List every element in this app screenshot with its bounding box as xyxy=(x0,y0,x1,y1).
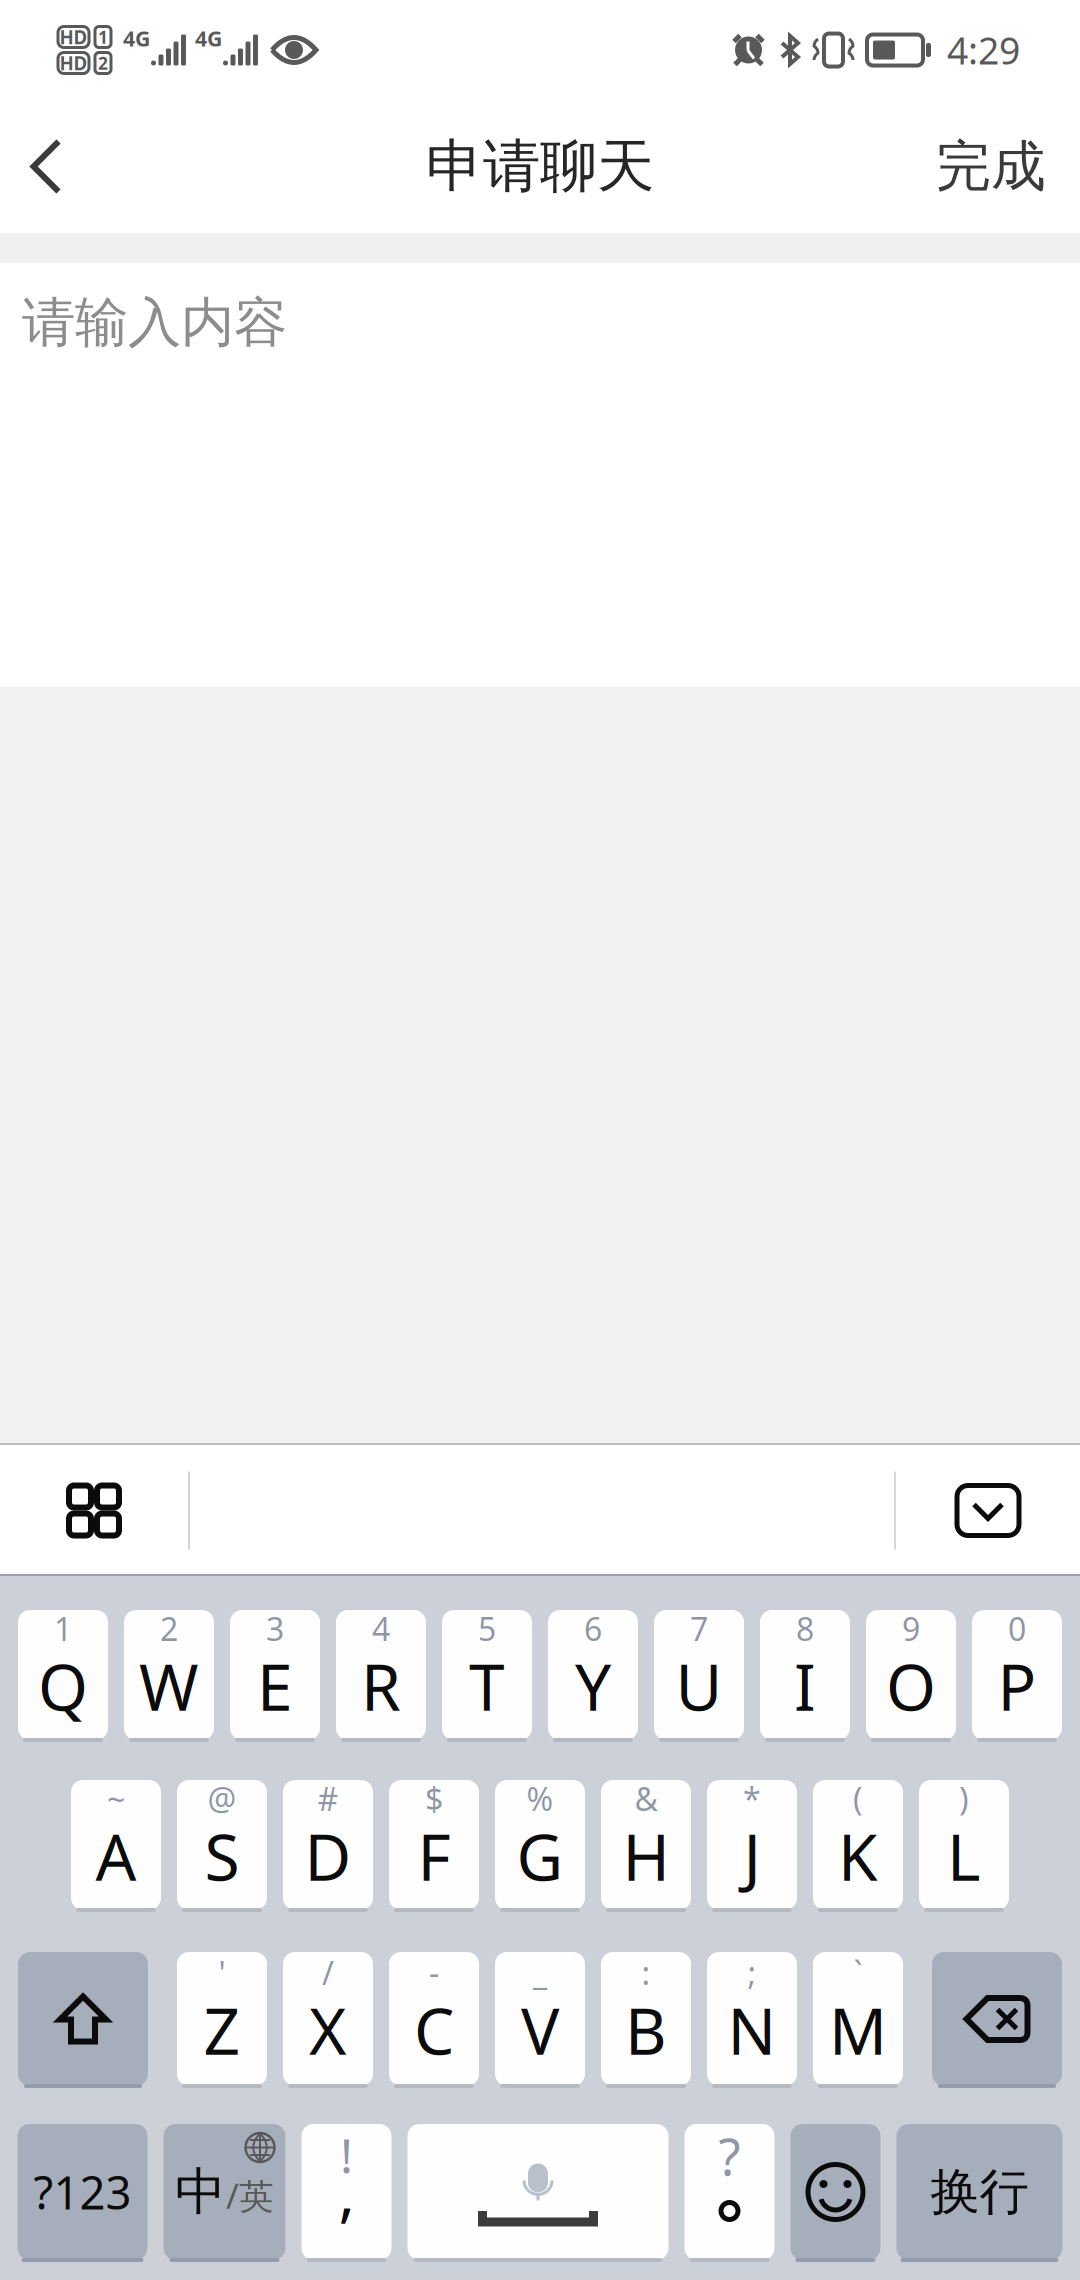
button[interactable]: 完成 xyxy=(908,100,1080,232)
staticText: B xyxy=(625,1987,667,2072)
button[interactable]: Back xyxy=(0,100,92,232)
button[interactable]: # xyxy=(283,1780,373,1910)
staticText: 4G xyxy=(123,24,150,52)
staticText: ` xyxy=(853,1951,862,1994)
staticText: $ xyxy=(425,1777,443,1820)
staticText: 请输入内容 xyxy=(22,290,287,355)
button[interactable]: Question mark and period xyxy=(684,2124,774,2260)
button[interactable]: Input panels xyxy=(0,1445,188,1576)
staticText: K xyxy=(838,1813,878,1898)
staticText: 1 xyxy=(98,25,108,48)
button[interactable]: ( xyxy=(813,1780,903,1910)
staticText: ( xyxy=(853,1777,863,1820)
staticText: R xyxy=(361,1643,401,1728)
button[interactable]: / xyxy=(283,1952,373,2086)
button[interactable]: - xyxy=(389,1952,479,2086)
staticText: / xyxy=(322,1951,334,1994)
staticText: # xyxy=(317,1777,338,1820)
staticText: 2 xyxy=(160,1607,178,1650)
staticText: ) xyxy=(959,1777,969,1820)
staticText: 2 xyxy=(98,51,108,74)
button[interactable]: 5 xyxy=(442,1610,532,1740)
button[interactable]: 6 xyxy=(548,1610,638,1740)
button[interactable]: 4 xyxy=(336,1610,426,1740)
button[interactable]: 2 xyxy=(124,1610,214,1740)
button[interactable]: % xyxy=(495,1780,585,1910)
staticText: ?123 xyxy=(33,2162,131,2222)
staticText: M xyxy=(829,1987,887,2072)
button[interactable]: ) xyxy=(919,1780,1009,1910)
button[interactable]: @ xyxy=(177,1780,267,1910)
button[interactable]: ` xyxy=(813,1952,903,2086)
staticText: E xyxy=(257,1643,293,1728)
staticText: 中 xyxy=(175,2161,226,2223)
staticText: HD xyxy=(59,51,87,75)
staticText: @ xyxy=(207,1777,236,1820)
staticText: ' xyxy=(218,1951,225,1994)
staticText: ! xyxy=(340,2123,353,2187)
staticText: ? xyxy=(718,2122,740,2190)
button[interactable]: _ xyxy=(495,1952,585,2086)
staticText: 1 xyxy=(54,1607,72,1650)
staticText: 5 xyxy=(478,1607,496,1650)
button[interactable]: ?123 xyxy=(17,2124,147,2260)
button[interactable]: Space xyxy=(407,2124,668,2260)
button[interactable]: Backspace xyxy=(932,1952,1062,2086)
staticText: 4:29 xyxy=(947,25,1020,75)
staticText: X xyxy=(309,1987,347,2072)
button[interactable]: 换行 xyxy=(896,2124,1062,2260)
button[interactable]: * xyxy=(707,1780,797,1910)
staticText: G xyxy=(516,1813,563,1898)
button[interactable]: ; xyxy=(707,1952,797,2086)
button[interactable]: 0 xyxy=(972,1610,1062,1740)
staticText: 3 xyxy=(266,1607,284,1650)
button[interactable]: 9 xyxy=(866,1610,956,1740)
button[interactable]: 1 xyxy=(18,1610,108,1740)
button[interactable]: $ xyxy=(389,1780,479,1910)
staticText: HD xyxy=(59,25,87,49)
button[interactable]: & xyxy=(601,1780,691,1910)
staticText: 换行 xyxy=(930,2162,1028,2222)
staticText: Y xyxy=(575,1643,611,1728)
staticText: ; xyxy=(747,1951,756,1994)
staticText: * xyxy=(743,1777,761,1820)
staticText: W xyxy=(139,1643,199,1728)
staticText: 完成 xyxy=(936,133,1046,200)
staticText: I xyxy=(794,1643,816,1728)
staticText: ~ xyxy=(107,1777,125,1820)
staticText: J xyxy=(743,1813,760,1898)
staticText: 8 xyxy=(796,1607,814,1650)
staticText: D xyxy=(304,1813,351,1898)
button[interactable]: Emoji xyxy=(790,2124,880,2260)
button[interactable]: ~ xyxy=(71,1780,161,1910)
staticText: /英 xyxy=(226,2172,274,2218)
button[interactable]: Hide keyboard xyxy=(896,1445,1080,1576)
staticText: 7 xyxy=(690,1607,708,1650)
staticText: 4G xyxy=(195,24,222,52)
staticText: Q xyxy=(38,1643,88,1728)
staticText: : xyxy=(641,1951,650,1994)
staticText: 9 xyxy=(902,1607,920,1650)
staticText: A xyxy=(95,1813,136,1898)
staticText: & xyxy=(634,1777,657,1820)
staticText: O xyxy=(886,1643,936,1728)
button[interactable]: Comma xyxy=(301,2124,391,2260)
staticText: 6 xyxy=(584,1607,602,1650)
staticText: % xyxy=(526,1777,553,1820)
staticText: U xyxy=(675,1643,722,1728)
button[interactable]: 8 xyxy=(760,1610,850,1740)
button[interactable]: : xyxy=(601,1952,691,2086)
button[interactable]: Shift xyxy=(18,1952,148,2086)
button[interactable]: 7 xyxy=(654,1610,744,1740)
staticText: , xyxy=(338,2151,354,2233)
button[interactable]: Switch language xyxy=(163,2124,285,2260)
staticText: _ xyxy=(533,1951,547,1994)
staticText: Z xyxy=(203,1987,240,2072)
staticText: S xyxy=(204,1813,239,1898)
button[interactable]: ' xyxy=(177,1952,267,2086)
staticText: L xyxy=(947,1813,981,1898)
staticText: - xyxy=(429,1951,439,1994)
button[interactable]: 3 xyxy=(230,1610,320,1740)
staticText: N xyxy=(727,1987,776,2072)
staticText: H xyxy=(622,1813,669,1898)
